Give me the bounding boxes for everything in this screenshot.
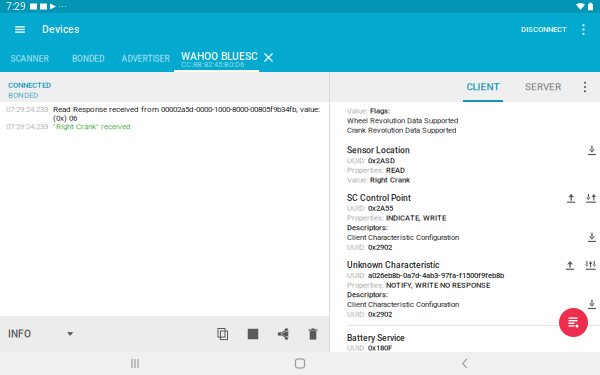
button[interactable]: Recents: [105, 352, 165, 375]
button[interactable]: Share: [268, 316, 298, 352]
button[interactable]: Notify: [585, 260, 596, 270]
staticText: Value:: [347, 106, 370, 115]
staticText: 0x2902: [368, 310, 392, 319]
staticText: Flags:: [370, 106, 390, 115]
button[interactable]: Read descriptor: [588, 233, 596, 242]
staticText: CC:8B:82:45:B0:D6: [181, 60, 244, 69]
staticText: Devices: [42, 23, 79, 36]
staticText: Client Characteristic Configuration: [347, 300, 459, 309]
staticText: Properties:: [347, 166, 386, 175]
button[interactable]: WAHOO BLUESC: [174, 46, 259, 72]
button[interactable]: Menu: [0, 13, 40, 46]
staticText: Client Characteristic Configuration: [347, 233, 459, 242]
button[interactable]: Delete: [298, 316, 328, 352]
button[interactable]: Read: [588, 146, 596, 155]
staticText: 0x2ASD: [368, 156, 395, 165]
staticText: NOTIFY, WRITE NO RESPONSE: [386, 281, 490, 289]
staticText: 07:29:24.233: [6, 105, 48, 114]
staticText: CONNECTED: [8, 80, 51, 90]
staticText: UUID:: [347, 271, 368, 280]
button[interactable]: DISCONNECT: [515, 13, 573, 46]
staticText: UUID:: [347, 343, 368, 352]
staticText: Properties:: [347, 281, 386, 289]
staticText: BONDED: [8, 90, 38, 100]
button[interactable]: Log: [559, 308, 588, 337]
staticText: Crank Revolution Data Supported: [347, 126, 456, 135]
staticText: 0x2A55: [368, 204, 393, 213]
staticText: "Right Crank" received: [53, 122, 131, 131]
staticText: Descriptors:: [347, 223, 388, 232]
button[interactable]: SCANNER: [0, 46, 59, 72]
staticText: SC Control Point: [347, 193, 411, 203]
button[interactable]: More options: [573, 13, 594, 46]
button[interactable]: Read descriptor: [588, 300, 596, 309]
staticText: 0x2902: [368, 243, 392, 251]
staticText: INFO: [8, 328, 31, 340]
button[interactable]: Write: [566, 260, 574, 270]
staticText: WAHOO BLUESC: [181, 51, 258, 62]
staticText: ADVERTISER: [121, 54, 169, 64]
staticText: UUID:: [347, 204, 368, 213]
staticText: DISCONNECT: [521, 25, 567, 34]
staticText: Read Response received from 00002a5d-000…: [53, 105, 320, 114]
button[interactable]: ADVERTISER: [117, 46, 174, 72]
button[interactable]: Indicate: [586, 193, 596, 203]
staticText: 0x180F: [368, 343, 392, 352]
button[interactable]: BONDED: [59, 46, 117, 72]
button[interactable]: Write: [567, 193, 575, 203]
button[interactable]: Copy: [208, 316, 238, 352]
staticText: 7:29: [6, 1, 26, 12]
staticText: Right Crank: [370, 175, 410, 184]
staticText: (0x) 06: [53, 113, 77, 123]
staticText: Unknown Characteristic: [347, 260, 439, 270]
staticText: 07:29:24.233: [6, 122, 48, 131]
staticText: BONDED: [72, 54, 104, 64]
staticText: CLIENT: [466, 81, 499, 93]
button[interactable]: Back: [435, 352, 495, 375]
staticText: INDICATE, WRITE: [386, 213, 446, 222]
staticText: Properties:: [347, 213, 386, 222]
staticText: Battery Service: [347, 333, 405, 343]
staticText: UUID:: [347, 243, 368, 251]
button[interactable]: Home: [270, 352, 330, 375]
staticText: UUID:: [347, 156, 368, 165]
staticText: Descriptors:: [347, 290, 388, 299]
button[interactable]: INFO: [0, 316, 110, 352]
button[interactable]: More options: [575, 72, 595, 102]
staticText: Value:: [347, 175, 370, 184]
button[interactable]: CLIENT: [457, 72, 509, 102]
staticText: a026eb8b-0a7d-4ab3-97fa-f1500f9feb8b: [368, 271, 504, 280]
staticText: UUID:: [347, 310, 368, 319]
staticText: Wheel Revolution Data Supported: [347, 116, 458, 125]
button[interactable]: SERVER: [517, 72, 569, 102]
staticText: SCANNER: [10, 54, 48, 64]
button[interactable]: Save: [238, 316, 268, 352]
staticText: READ: [386, 166, 405, 175]
staticText: SERVER: [525, 81, 561, 93]
staticText: Sensor Location: [347, 145, 410, 155]
